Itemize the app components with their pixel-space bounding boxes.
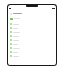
button[interactable] [8, 54, 56, 58]
button[interactable] [8, 22, 56, 26]
button[interactable] [8, 34, 56, 38]
button[interactable] [8, 38, 56, 42]
button[interactable]: Menu [8, 11, 56, 16]
button[interactable] [8, 30, 56, 34]
button[interactable] [8, 42, 56, 46]
button[interactable] [8, 16, 56, 21]
button[interactable] [8, 26, 56, 30]
button[interactable] [8, 46, 56, 50]
button[interactable] [8, 50, 56, 54]
